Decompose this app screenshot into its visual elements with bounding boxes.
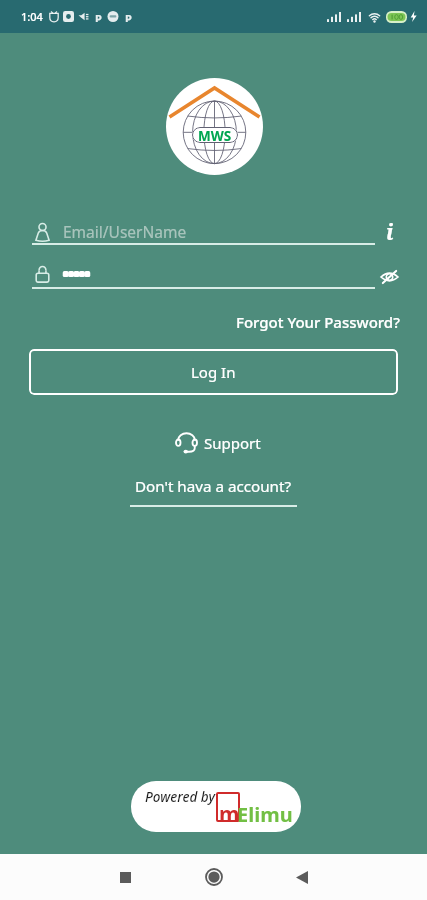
button[interactable]: Powered by (131, 781, 301, 832)
staticText: m (219, 800, 240, 829)
button[interactable] (35, 265, 375, 283)
staticText: Email/UserName (63, 221, 187, 242)
staticText: P (95, 11, 102, 22)
button[interactable]: Information (374, 216, 406, 248)
staticText: Elimu (237, 801, 293, 828)
button[interactable]: Log In (29, 349, 398, 395)
staticText: Support (204, 433, 261, 453)
button[interactable]: Don't hava a account? (124, 476, 303, 507)
staticText: i (386, 218, 394, 247)
button[interactable]: Back (279, 854, 324, 900)
staticText: Log In (191, 362, 236, 382)
button[interactable]: Forgot Your Password? (231, 309, 400, 335)
button[interactable]: Support (168, 429, 267, 456)
staticText: P (125, 11, 132, 22)
button[interactable]: Show password (373, 261, 405, 293)
staticText: 1:04 (21, 9, 43, 24)
button[interactable]: Home (191, 854, 236, 900)
staticText: Don't hava a account? (135, 476, 292, 497)
staticText: Powered by (145, 788, 215, 806)
button[interactable]: Email/UserName (35, 221, 375, 242)
button[interactable]: Recent apps (103, 854, 148, 900)
staticText: MWS (198, 127, 232, 143)
staticText: Forgot Your Password? (236, 312, 400, 332)
